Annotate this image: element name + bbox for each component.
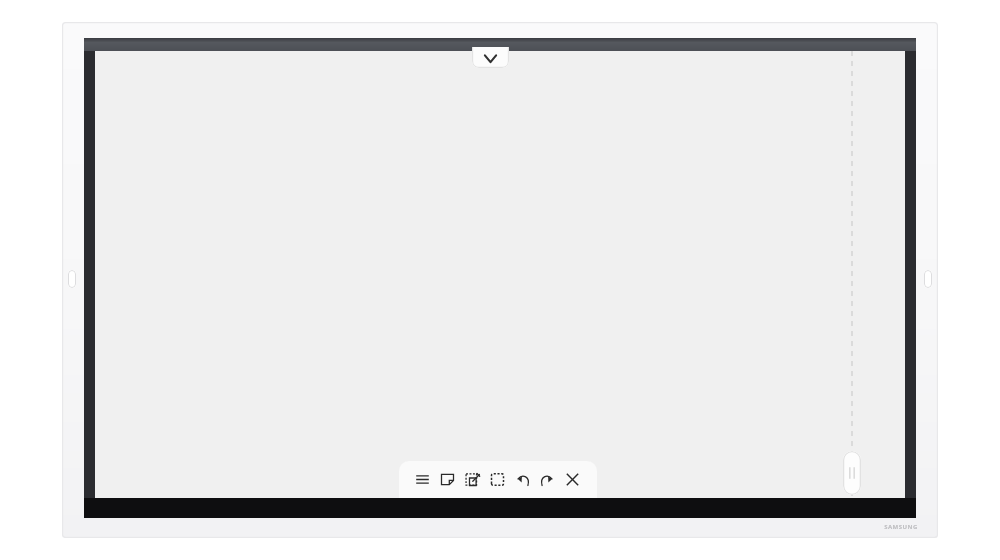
button[interactable]: Stylus pen	[843, 451, 861, 495]
button[interactable]: Undo	[510, 463, 535, 496]
button[interactable]: Select area	[485, 463, 510, 496]
button[interactable]: Close	[560, 463, 585, 496]
button[interactable]: Redo	[535, 463, 560, 496]
button[interactable]: Open menu	[472, 47, 509, 68]
button[interactable]: Note	[435, 463, 460, 496]
staticText: SAMSUNG	[884, 523, 918, 531]
button[interactable]: Menu	[410, 463, 435, 496]
button[interactable]: Import page	[460, 463, 485, 496]
